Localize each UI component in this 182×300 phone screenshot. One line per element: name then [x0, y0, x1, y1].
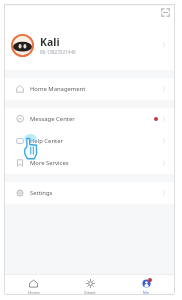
button[interactable]: Kali [5, 30, 174, 60]
staticText: Smart [84, 290, 96, 294]
button[interactable]: Smart [62, 275, 118, 294]
button[interactable]: Message Center [5, 108, 174, 130]
button[interactable]: Settings [5, 182, 174, 204]
staticText: Message Center [30, 115, 154, 123]
button[interactable]: More Services [5, 152, 174, 174]
staticText: 86-13823321446 [40, 49, 76, 55]
staticText: Help Center [30, 137, 162, 145]
staticText: More Services [30, 159, 162, 167]
staticText: Settings [30, 189, 162, 197]
button[interactable]: Home [5, 275, 62, 294]
staticText: Me [143, 290, 149, 294]
button[interactable]: Home Management [5, 78, 174, 100]
staticText: Kali [40, 35, 60, 49]
staticText: Home [28, 290, 40, 294]
staticText: Home Management [30, 85, 162, 93]
button[interactable]: Help Center [5, 130, 174, 152]
button[interactable]: Scan [158, 5, 172, 19]
button[interactable]: Me [118, 275, 174, 294]
